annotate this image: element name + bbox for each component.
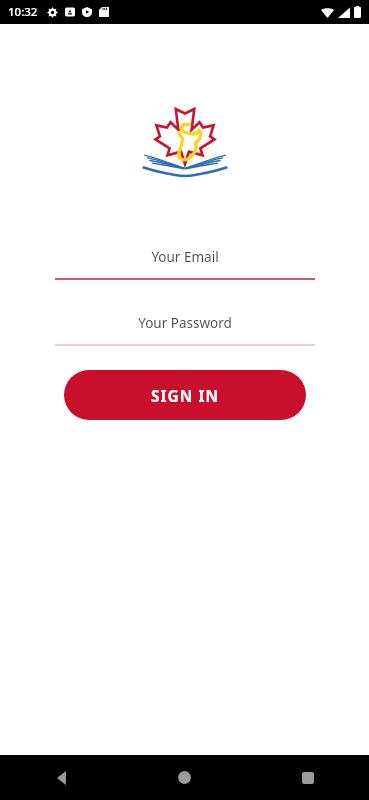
button[interactable]: Your Password [55, 308, 315, 346]
button[interactable]: SIGN IN [64, 370, 306, 420]
staticText: Your Email [151, 248, 219, 266]
button[interactable]: Recent apps [246, 755, 369, 800]
button[interactable]: Your Email [55, 242, 315, 280]
button[interactable]: Home [123, 755, 246, 800]
staticText: Your Password [138, 314, 232, 332]
staticText: 10:32 [8, 4, 38, 20]
staticText: SIGN IN [151, 385, 220, 406]
button[interactable]: Back [0, 755, 123, 800]
